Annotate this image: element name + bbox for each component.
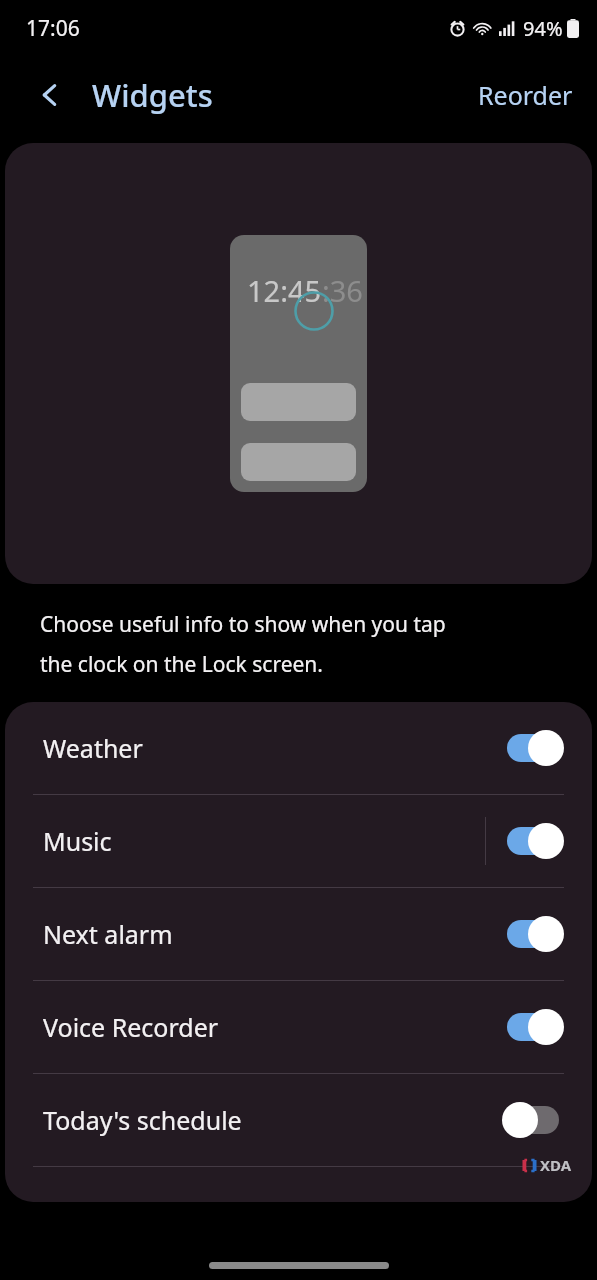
staticText: :36 (322, 271, 363, 310)
button[interactable]: Back (22, 67, 78, 123)
staticText: 94% (523, 15, 563, 42)
button[interactable]: Voice Recorder (5, 981, 592, 1073)
staticText: 12:45 (247, 271, 322, 310)
staticText: Voice Recorder (43, 1010, 485, 1044)
staticText: Weather (43, 731, 485, 765)
staticText: Reorder (478, 78, 573, 112)
button[interactable]: Music (5, 795, 592, 887)
staticText: XDA (540, 1155, 572, 1175)
staticText: Music (43, 824, 485, 858)
button[interactable]: Weather (5, 702, 592, 794)
button[interactable]: Next alarm (5, 888, 592, 980)
staticText: 17:06 (26, 14, 80, 43)
button[interactable]: Reorder (466, 70, 585, 120)
staticText: Choose useful info to show when you tap … (40, 610, 446, 678)
staticText: Today's schedule (43, 1103, 485, 1137)
button[interactable]: Today's schedule (5, 1074, 592, 1166)
staticText: Next alarm (43, 917, 485, 951)
staticText: Widgets (92, 74, 213, 116)
